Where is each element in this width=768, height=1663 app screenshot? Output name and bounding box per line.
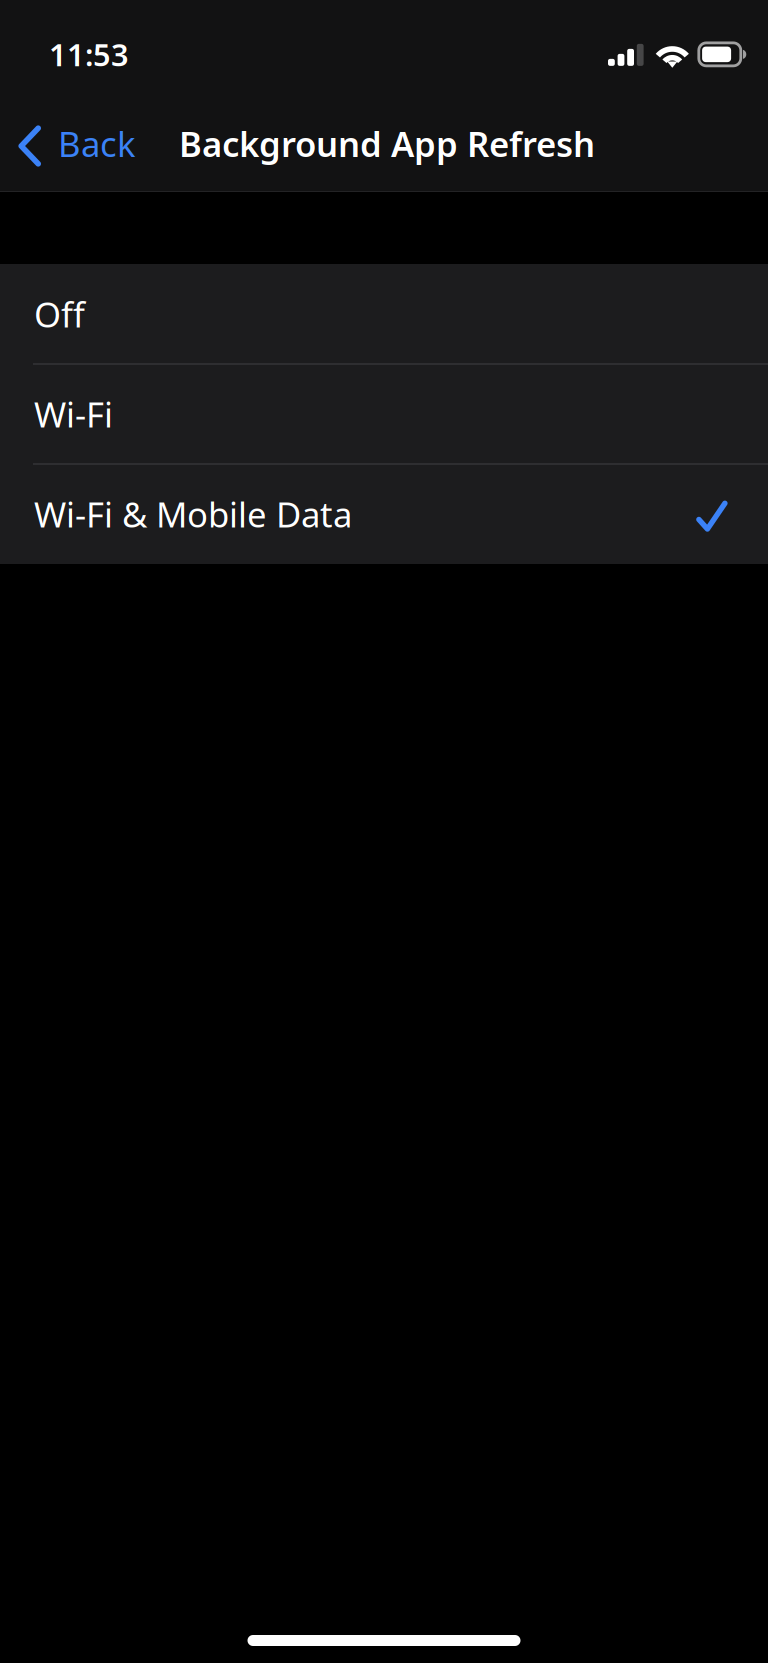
staticText: Background App Refresh xyxy=(179,120,595,166)
button[interactable]: Wi-Fi xyxy=(0,364,768,464)
staticText: Wi-Fi xyxy=(34,391,113,437)
button[interactable]: Off xyxy=(0,264,768,364)
staticText: Off xyxy=(34,291,85,337)
staticText: Back xyxy=(58,120,136,166)
button[interactable]: Back xyxy=(0,106,150,181)
staticText: Wi-Fi & Mobile Data xyxy=(34,491,352,537)
button[interactable]: Wi-Fi & Mobile Data xyxy=(0,464,768,564)
staticText: 11:53 xyxy=(49,34,129,75)
